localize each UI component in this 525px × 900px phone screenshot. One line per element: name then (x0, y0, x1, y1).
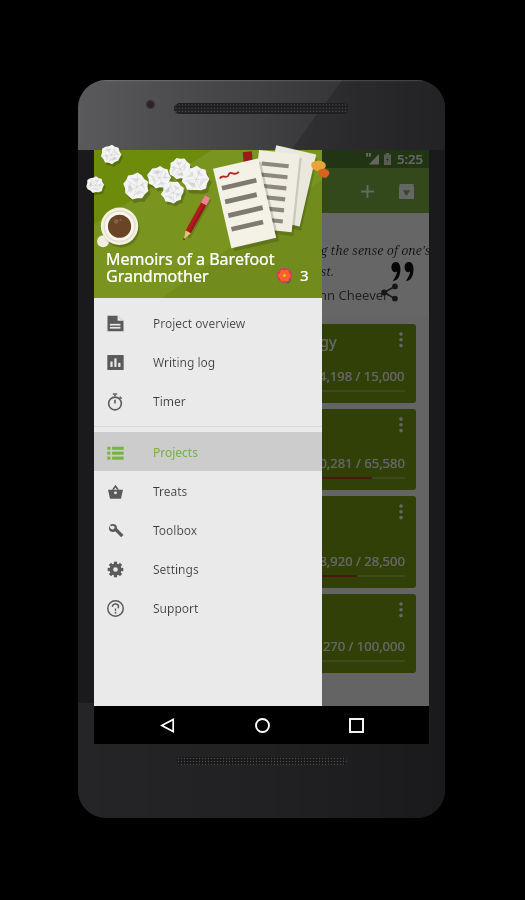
button[interactable]: The art of writing is the art of making … (94, 213, 429, 317)
staticText: 18,920 / 28,500 (312, 552, 405, 570)
button[interactable]: More options (386, 324, 416, 354)
button[interactable]: Timer (94, 381, 322, 420)
staticText: Toolbox (153, 522, 198, 538)
staticText: Recommended by John Cheever (194, 286, 389, 304)
button[interactable]: The Court of Louis XIV (107, 594, 416, 673)
staticText: The Court of Louis XIV (118, 601, 274, 621)
button[interactable]: Projects (94, 432, 322, 471)
button[interactable]: Add project (348, 172, 386, 210)
staticText: Settings (153, 561, 199, 577)
button[interactable]: More options (386, 409, 416, 439)
button[interactable]: Project overview (94, 303, 322, 342)
staticText: Project overview (153, 315, 246, 331)
button[interactable]: Treats (94, 471, 322, 510)
staticText: 5:25 (397, 150, 423, 168)
staticText: The art of writing is the art of making … (108, 242, 431, 279)
staticText: Treats (153, 483, 188, 499)
staticText: 50,281 / 65,580 (312, 454, 405, 472)
button[interactable]: A Winter to Remember (107, 409, 416, 490)
staticText: 3 (300, 265, 309, 285)
staticText: Timer (153, 393, 186, 409)
staticText: Memoirs of a Barefoot Grandmother (106, 248, 275, 287)
button[interactable]: The Collected Chaos Anthology (107, 324, 416, 403)
button[interactable]: Settings (94, 549, 322, 588)
button[interactable]: Toolbox (94, 510, 322, 549)
button[interactable]: Home (240, 706, 284, 744)
staticText: Writing log (153, 354, 216, 370)
staticText: 1,270 / 100,000 (312, 637, 405, 655)
button[interactable]: Share quote (380, 283, 399, 302)
staticText: Projects (153, 444, 198, 460)
button[interactable]: Support (94, 588, 322, 627)
button[interactable]: More options (386, 594, 416, 624)
staticText: The Collected Chaos Anthology (118, 331, 337, 351)
staticText: Support (153, 600, 199, 616)
button[interactable]: The Fearsome Feline (107, 496, 416, 588)
button[interactable]: Recent apps (334, 706, 378, 744)
staticText: 4,198 / 15,000 (319, 367, 405, 385)
staticText: A Winter to Remember (118, 416, 280, 436)
button[interactable]: Back (145, 706, 189, 744)
button[interactable]: Archive (387, 172, 425, 210)
button[interactable]: More options (386, 496, 416, 526)
button[interactable]: Writing log (94, 342, 322, 381)
